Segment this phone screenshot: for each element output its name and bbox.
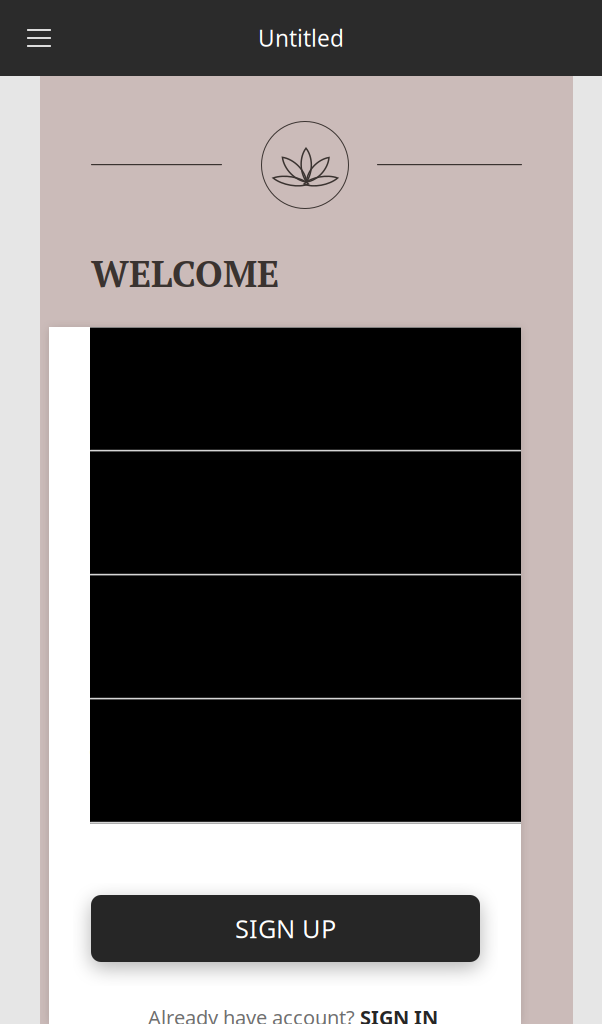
staticText: Email bbox=[89, 491, 136, 516]
staticText: Password bbox=[89, 615, 172, 640]
staticText: Confirm Password bbox=[89, 739, 248, 764]
staticText: SIGN IN bbox=[360, 1004, 438, 1024]
button[interactable]: SIGN UP bbox=[91, 895, 480, 962]
staticText: SIGN UP bbox=[235, 912, 336, 945]
staticText: Name bbox=[89, 367, 141, 392]
staticText: Already have account? bbox=[148, 1004, 360, 1024]
button[interactable]: SIGN IN bbox=[360, 1004, 438, 1024]
staticText: WELCOME bbox=[91, 249, 279, 298]
staticText: Untitled bbox=[258, 23, 344, 53]
button[interactable]: Menu bbox=[15, 14, 63, 62]
